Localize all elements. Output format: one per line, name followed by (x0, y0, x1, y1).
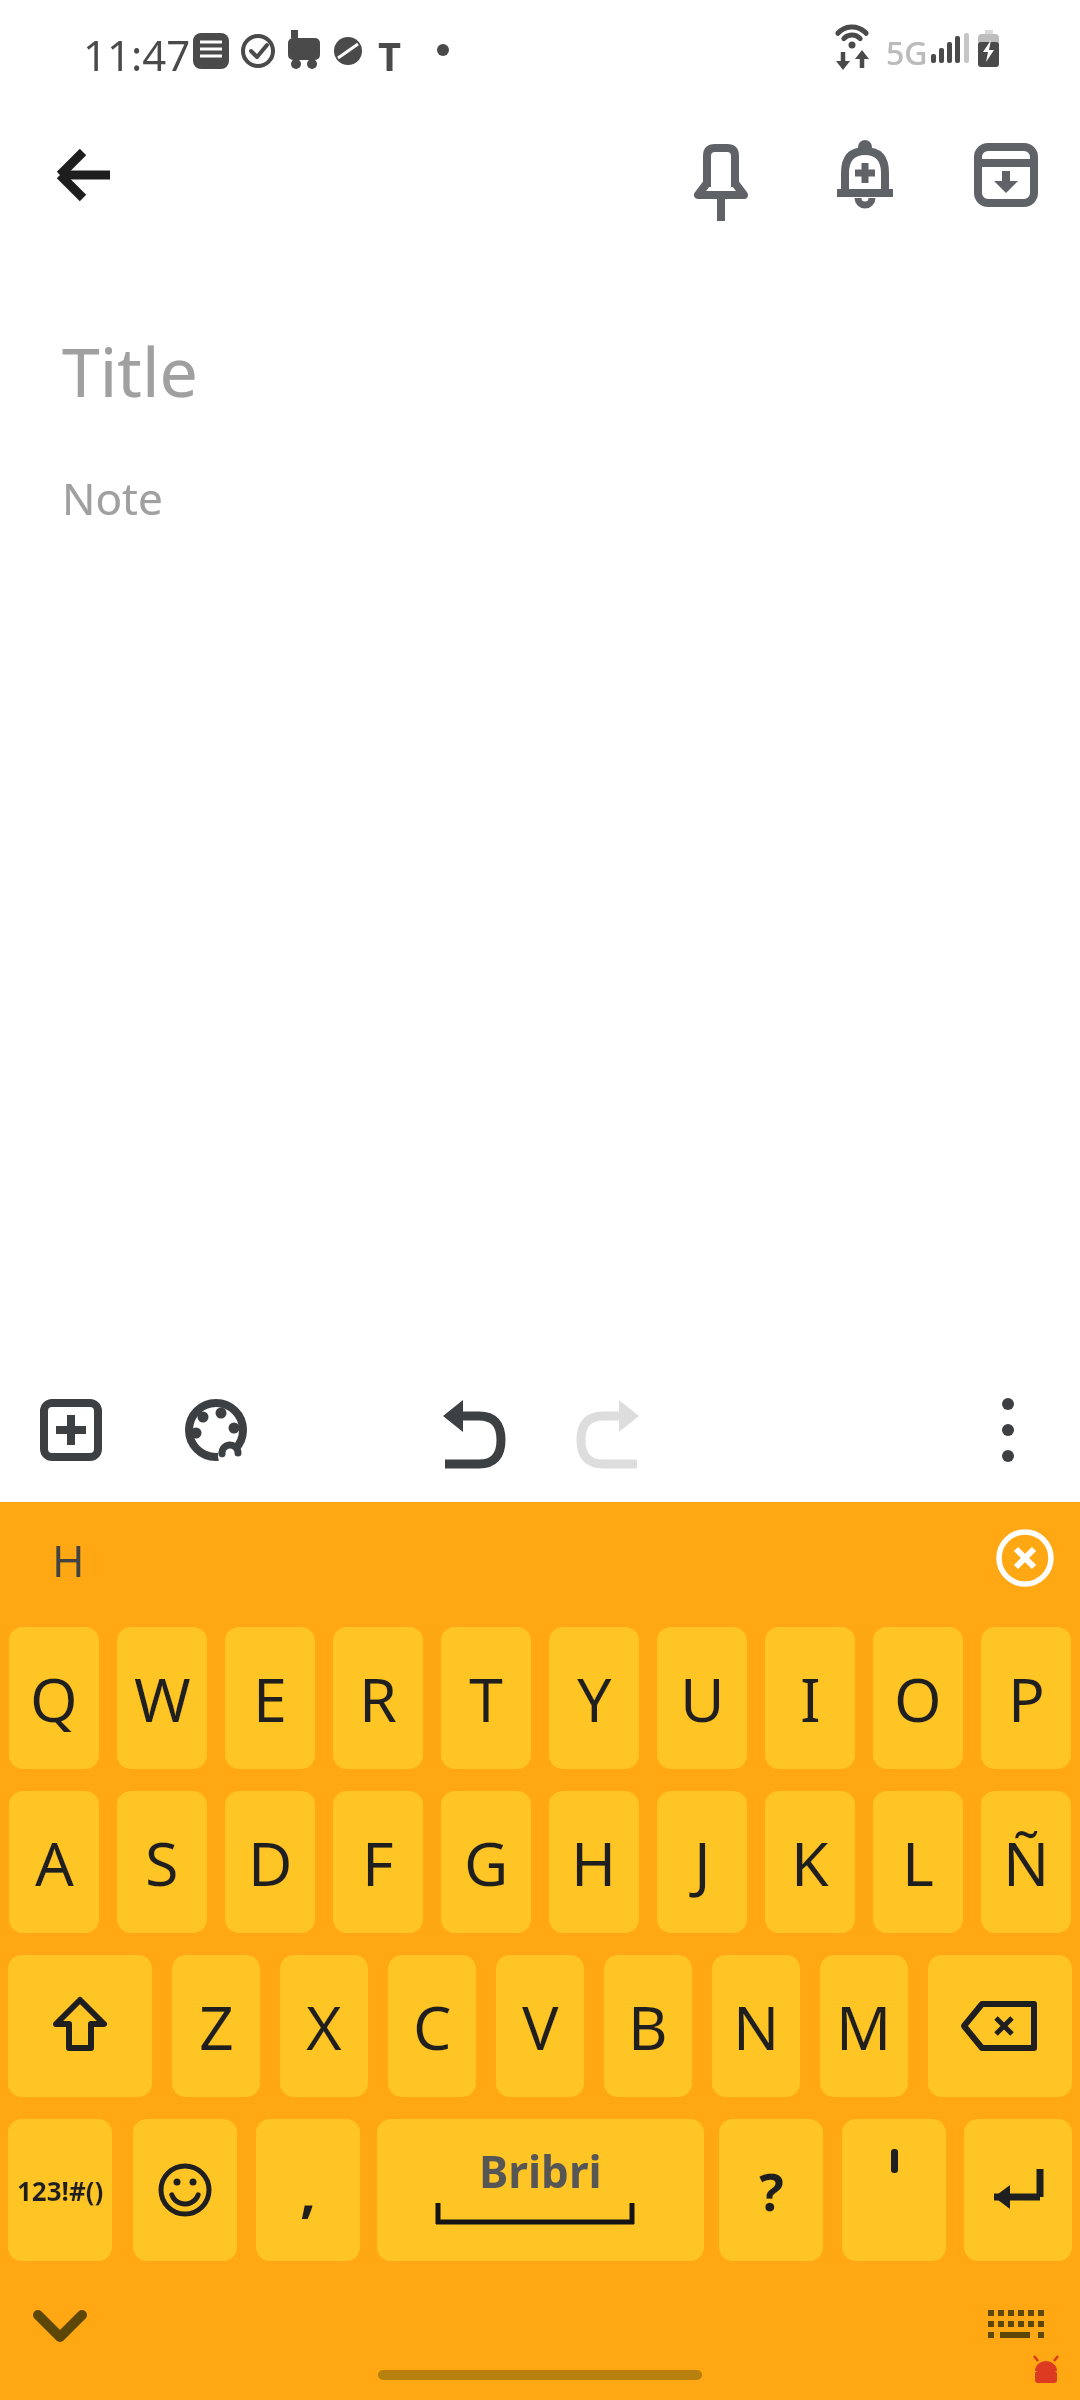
button[interactable]: H (52, 1530, 85, 1590)
staticText: Note (62, 468, 163, 528)
staticText: H (571, 1821, 617, 1904)
staticText: A (35, 1821, 74, 1904)
staticText: B (628, 1985, 668, 2068)
staticText: V (522, 1985, 559, 2068)
button[interactable] (958, 1380, 1058, 1480)
button[interactable]: Y (549, 1627, 639, 1769)
button[interactable]: Q (9, 1627, 99, 1769)
button[interactable] (8, 1955, 152, 2097)
staticText: T (469, 1657, 503, 1740)
button[interactable]: D (225, 1791, 315, 1933)
button[interactable] (671, 125, 771, 225)
staticText: T (378, 28, 402, 82)
button[interactable]: Bribri (377, 2119, 704, 2261)
button[interactable] (815, 125, 915, 225)
staticText: K (791, 1821, 829, 1904)
button[interactable]: M (820, 1955, 908, 2097)
staticText: Y (577, 1657, 612, 1740)
button[interactable] (563, 1380, 663, 1480)
button[interactable]: A (9, 1791, 99, 1933)
button[interactable]: C (388, 1955, 476, 2097)
button[interactable]: R (333, 1627, 423, 1769)
staticText: 123!#() (17, 2173, 104, 2208)
staticText: N (733, 1985, 780, 2068)
staticText: O (894, 1657, 942, 1740)
button[interactable]: Ñ (981, 1791, 1071, 1933)
button[interactable] (35, 125, 135, 225)
staticText: S (145, 1821, 179, 1904)
button[interactable] (20, 2293, 100, 2363)
staticText: G (464, 1821, 509, 1904)
button[interactable]: G (441, 1791, 531, 1933)
staticText: Q (30, 1657, 78, 1740)
staticText: Title (62, 324, 198, 417)
button[interactable]: Z (172, 1955, 260, 2097)
button[interactable]: S (117, 1791, 207, 1933)
button[interactable]: L (873, 1791, 963, 1933)
button[interactable] (995, 1528, 1055, 1588)
staticText: R (359, 1657, 397, 1740)
button[interactable] (928, 1955, 1072, 2097)
staticText: Bribri (479, 2141, 602, 2201)
button[interactable]: O (873, 1627, 963, 1769)
staticText: 11:47 (83, 26, 191, 83)
button[interactable] (166, 1380, 266, 1480)
staticText: Z (199, 1985, 234, 2068)
button[interactable]: T (441, 1627, 531, 1769)
staticText: F (362, 1821, 394, 1904)
button[interactable]: 123!#() (8, 2119, 112, 2261)
staticText: ? (759, 2155, 784, 2226)
staticText: M (836, 1985, 892, 2068)
staticText: E (253, 1657, 287, 1740)
staticText: C (413, 1985, 452, 2068)
button[interactable] (21, 1380, 121, 1480)
button[interactable]: ? (719, 2119, 823, 2261)
staticText: , (300, 2152, 316, 2228)
button[interactable]: V (496, 1955, 584, 2097)
staticText: X (306, 1985, 342, 2068)
button[interactable] (842, 2119, 946, 2261)
button[interactable]: E (225, 1627, 315, 1769)
button[interactable] (964, 2119, 1072, 2261)
button[interactable]: H (549, 1791, 639, 1933)
button[interactable]: , (256, 2119, 360, 2261)
button[interactable] (133, 2119, 237, 2261)
staticText: P (1008, 1657, 1045, 1740)
button[interactable]: B (604, 1955, 692, 2097)
button[interactable]: U (657, 1627, 747, 1769)
staticText: 5G (886, 31, 928, 75)
button[interactable]: W (117, 1627, 207, 1769)
staticText: I (800, 1657, 821, 1740)
button[interactable]: N (712, 1955, 800, 2097)
button[interactable]: J (657, 1791, 747, 1933)
staticText: J (694, 1821, 711, 1904)
button[interactable]: P (981, 1627, 1071, 1769)
button[interactable] (419, 1380, 519, 1480)
staticText: U (680, 1657, 725, 1740)
button[interactable]: I (765, 1627, 855, 1769)
staticText: W (134, 1657, 191, 1740)
button[interactable]: X (280, 1955, 368, 2097)
staticText: L (902, 1821, 934, 1904)
button[interactable] (956, 125, 1056, 225)
button[interactable]: K (765, 1791, 855, 1933)
staticText: D (248, 1821, 293, 1904)
button[interactable]: F (333, 1791, 423, 1933)
staticText: Ñ (1003, 1821, 1050, 1904)
